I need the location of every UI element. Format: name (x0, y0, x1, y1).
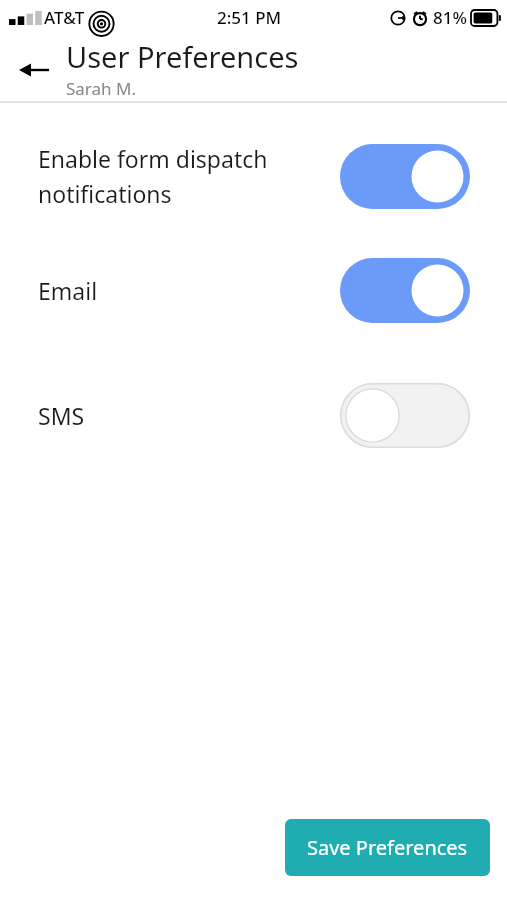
staticText: 81% (433, 6, 467, 29)
staticText: Enable form dispatch notifications (38, 143, 326, 210)
staticText: 2:51 PM (217, 6, 282, 29)
staticText: Save Preferences (307, 834, 468, 861)
button[interactable]: Email (0, 258, 507, 323)
button[interactable]: Back (10, 46, 58, 94)
staticText: AT&T (44, 6, 85, 29)
button[interactable]: SMS (0, 383, 507, 448)
staticText: User Preferences (66, 37, 299, 76)
staticText: Sarah M. (66, 77, 136, 100)
staticText: Email (38, 275, 326, 306)
button[interactable]: Enable form dispatch notifications (0, 143, 507, 210)
staticText: SMS (38, 400, 326, 431)
button[interactable]: Save Preferences (285, 819, 490, 876)
